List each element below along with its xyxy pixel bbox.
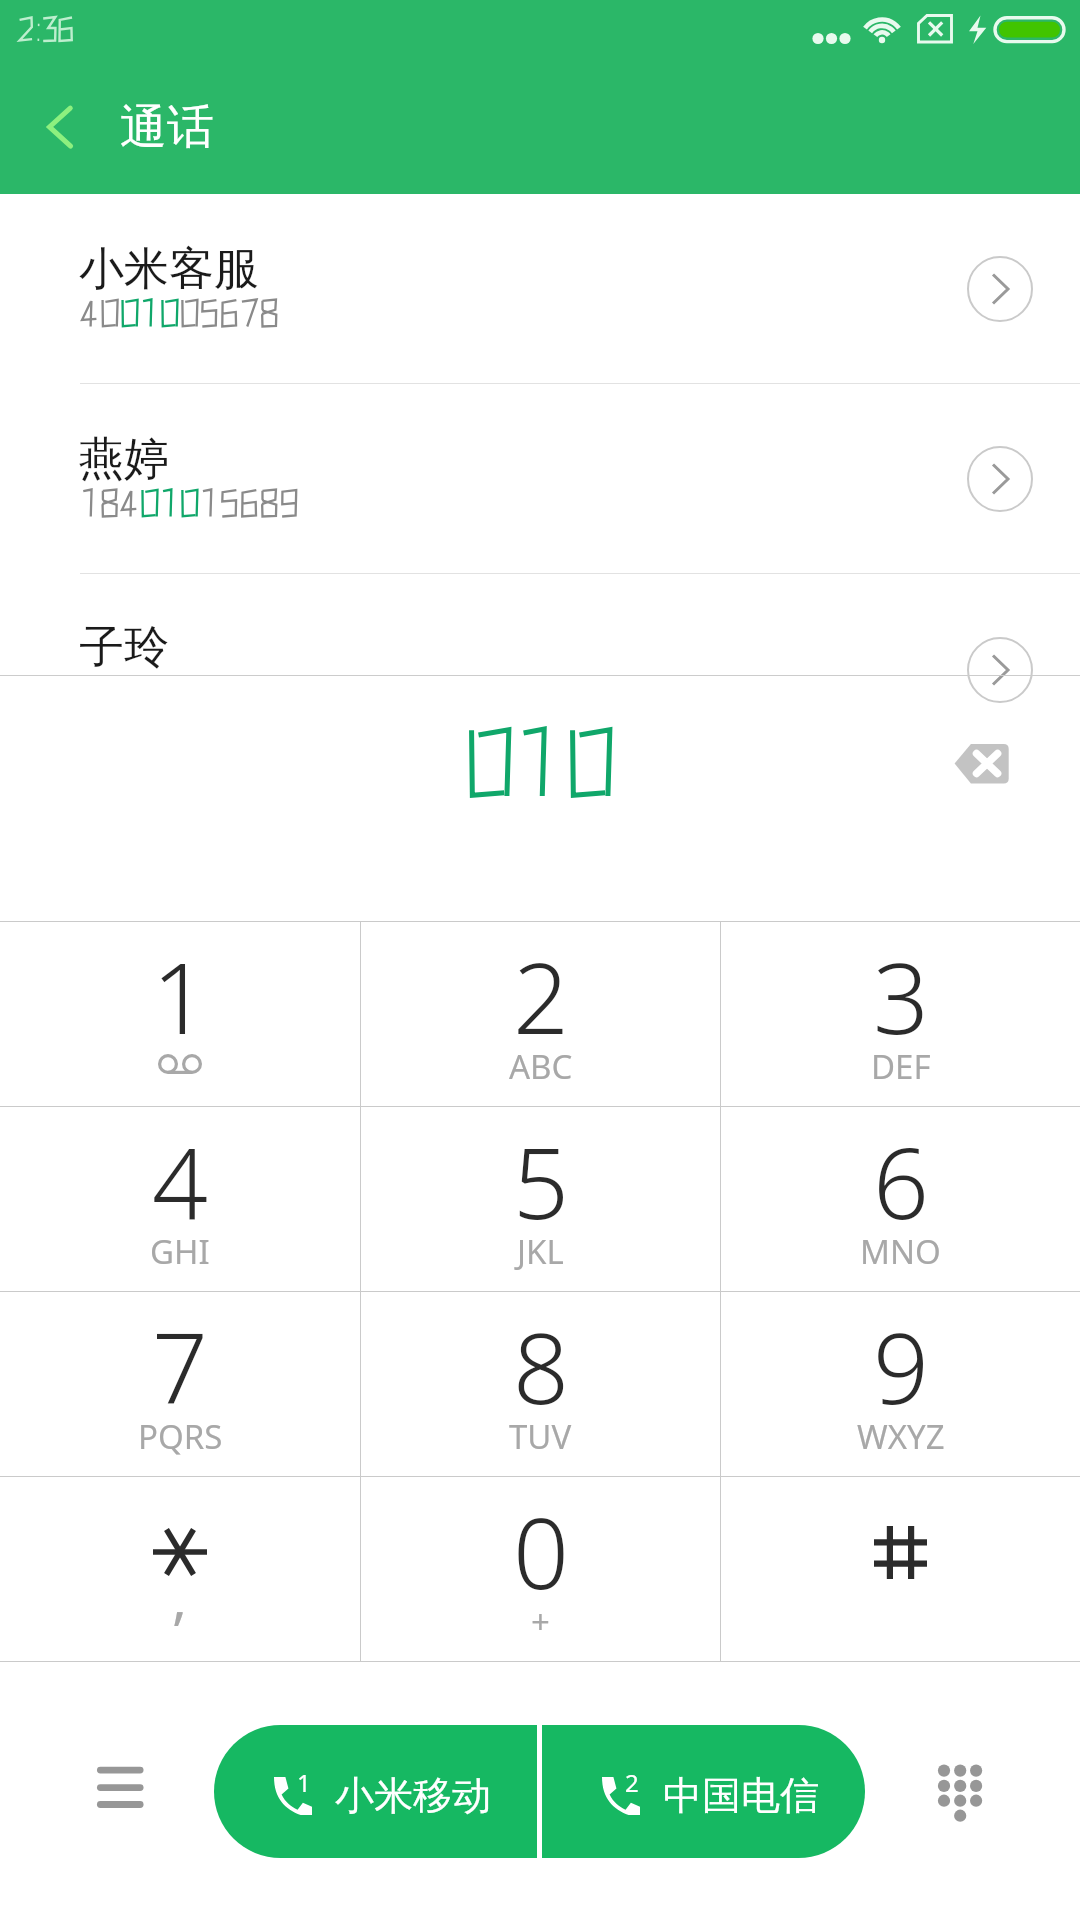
button[interactable]: 3 <box>721 922 1080 1106</box>
staticText: , <box>172 1559 188 1635</box>
staticText: 1 <box>152 929 208 1062</box>
staticText: 小米客服 <box>79 241 259 298</box>
button[interactable]: 燕婷 <box>0 384 1080 574</box>
staticText: + <box>531 1599 550 1644</box>
button[interactable]: 2 <box>542 1725 865 1858</box>
staticText: 3 <box>873 929 929 1062</box>
staticText: ABC <box>509 1044 573 1089</box>
button[interactable]: Backspace <box>925 718 1039 828</box>
staticText: 6 <box>873 1114 929 1247</box>
button[interactable]: 2 <box>361 922 720 1106</box>
button[interactable]: 7 <box>0 1292 360 1476</box>
button[interactable]: Dialpad <box>900 1710 1020 1830</box>
staticText: 中国电信 <box>663 1771 819 1820</box>
staticText: 燕婷 <box>79 431 169 488</box>
button[interactable]: Menu <box>60 1710 180 1830</box>
staticText: WXYZ <box>857 1414 945 1459</box>
button[interactable]: Details <box>966 445 1034 513</box>
button[interactable]: , <box>0 1477 360 1661</box>
button[interactable]: 1 <box>0 922 360 1106</box>
button[interactable]: Details <box>966 255 1034 323</box>
staticText: 5 <box>513 1114 569 1247</box>
button[interactable]: 1 <box>214 1725 537 1858</box>
staticText: MNO <box>860 1229 941 1274</box>
staticText: 通话 <box>120 98 214 157</box>
button[interactable]: 子玲 <box>0 574 1080 676</box>
staticText: 2 <box>513 929 569 1062</box>
staticText: 2 <box>625 1766 639 1799</box>
button[interactable] <box>721 1477 1080 1661</box>
button[interactable]: 小米客服 <box>0 194 1080 384</box>
staticText: PQRS <box>138 1414 223 1459</box>
staticText: DEF <box>871 1044 931 1089</box>
staticText: 8 <box>513 1299 569 1432</box>
button[interactable]: 0 <box>361 1477 720 1661</box>
staticText: 小米移动 <box>335 1771 491 1820</box>
staticText: 子玲 <box>79 619 169 676</box>
button[interactable]: 4 <box>0 1107 360 1291</box>
staticText: 7 <box>152 1299 208 1432</box>
button[interactable]: 8 <box>361 1292 720 1476</box>
staticText: 1 <box>297 1766 311 1799</box>
staticText: GHI <box>150 1229 210 1274</box>
staticText: JKL <box>517 1229 564 1274</box>
staticText: 4 <box>152 1114 208 1247</box>
button[interactable]: 9 <box>721 1292 1080 1476</box>
button[interactable]: 6 <box>721 1107 1080 1291</box>
staticText: 9 <box>873 1299 929 1432</box>
staticText: 0 <box>513 1484 569 1617</box>
button[interactable]: Back <box>0 56 118 174</box>
staticText: TUV <box>509 1414 572 1459</box>
button[interactable]: 5 <box>361 1107 720 1291</box>
